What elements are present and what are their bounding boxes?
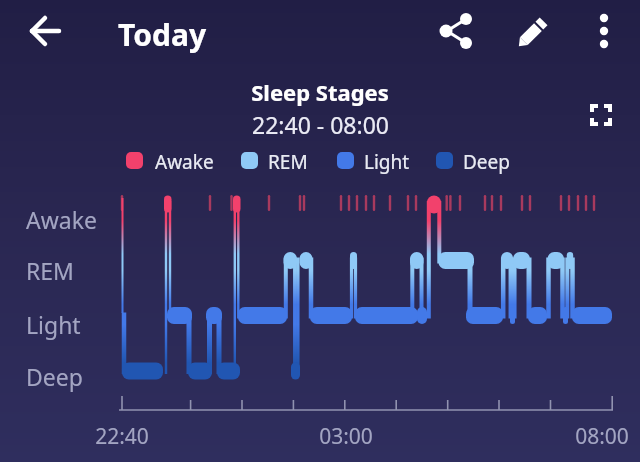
staticText: Awake [155, 149, 214, 175]
staticText: 22:40 - 08:00 [252, 109, 389, 140]
button[interactable] [435, 8, 483, 56]
staticText: Deep [26, 361, 83, 392]
button[interactable] [21, 7, 69, 55]
staticText: REM [26, 255, 74, 286]
staticText: Today [118, 14, 207, 55]
staticText: Light [364, 149, 410, 175]
button[interactable] [577, 91, 625, 139]
staticText: Sleep Stages [251, 77, 389, 107]
staticText: Light [26, 309, 81, 340]
staticText: REM [268, 149, 308, 175]
staticText: 03:00 [319, 422, 373, 451]
staticText: 22:40 [95, 422, 149, 451]
staticText: 08:00 [575, 422, 629, 451]
staticText: Awake [26, 204, 97, 235]
button[interactable] [580, 8, 628, 56]
button[interactable] [509, 8, 557, 56]
staticText: Deep [463, 149, 510, 175]
